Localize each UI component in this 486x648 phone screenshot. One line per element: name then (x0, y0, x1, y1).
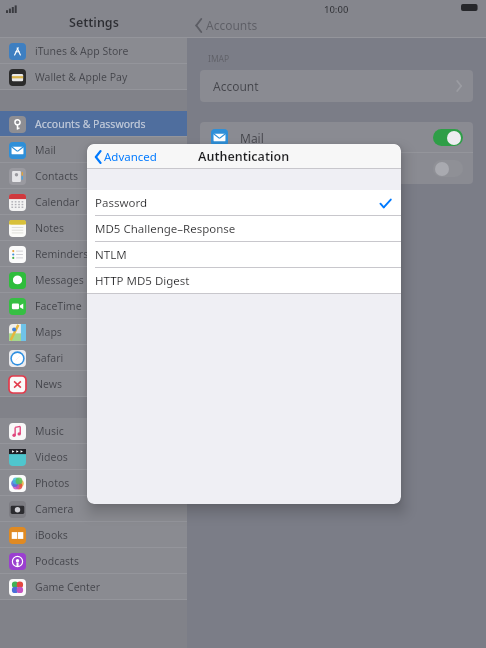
staticText: 10:00 (324, 3, 349, 16)
staticText: Music (35, 424, 64, 438)
staticText: NTLM (95, 247, 127, 263)
staticText: Game Center (35, 580, 101, 594)
button[interactable]: Camera (0, 496, 187, 522)
staticText: Notes (35, 221, 65, 235)
staticText: FaceTime (35, 299, 82, 313)
staticText: Reminders (35, 247, 89, 261)
staticText: Calendar (35, 195, 80, 209)
staticText: Videos (35, 450, 68, 464)
button[interactable]: Podcasts (0, 548, 187, 574)
button[interactable]: Videos (0, 444, 187, 470)
button[interactable]: Account (200, 70, 473, 102)
button[interactable]: HTTP MD5 Digest (87, 268, 401, 294)
button[interactable]: MD5 Challenge–Response (87, 216, 401, 242)
button[interactable]: Back to Accounts (195, 17, 258, 33)
button[interactable]: News (0, 371, 187, 397)
staticText: HTTP MD5 Digest (95, 273, 190, 289)
button[interactable]: Safari (0, 345, 187, 371)
staticText: IMAP (208, 53, 230, 65)
button[interactable]: Photos (0, 470, 187, 496)
staticText: Accounts & Passwords (35, 117, 146, 131)
button[interactable]: FaceTime (0, 293, 187, 319)
button[interactable]: Game Center (0, 574, 187, 600)
staticText: Account (213, 78, 259, 94)
button[interactable]: Maps (0, 319, 187, 345)
button[interactable]: Reminders (0, 241, 187, 267)
other: Notes disabled (433, 160, 463, 177)
staticText: Accounts (206, 17, 258, 33)
button[interactable]: Password (87, 190, 401, 216)
button[interactable]: Mail (0, 137, 187, 163)
staticText: Password (95, 195, 148, 211)
staticText: Photos (35, 476, 70, 490)
staticText: Safari (35, 351, 64, 365)
staticText: News (35, 377, 62, 391)
button[interactable]: Advanced (93, 146, 159, 168)
staticText: Maps (35, 325, 62, 339)
staticText: iBooks (35, 528, 68, 542)
button[interactable]: iTunes & App Store (0, 38, 187, 64)
button[interactable]: iBooks (0, 522, 187, 548)
staticText: Podcasts (35, 554, 79, 568)
button[interactable]: Mail (200, 122, 473, 153)
button[interactable]: Calendar (0, 189, 187, 215)
button[interactable]: Wallet & Apple Pay (0, 64, 187, 90)
staticText: Authentication (198, 148, 290, 165)
staticText: Messages (35, 273, 84, 287)
staticText: Camera (35, 502, 74, 516)
staticText: Mail (240, 130, 264, 146)
staticText: Advanced (104, 149, 157, 165)
button[interactable]: NTLM (87, 242, 401, 268)
other: Mail enabled (433, 129, 463, 146)
button[interactable]: Notes (0, 215, 187, 241)
button[interactable]: Accounts & Passwords (0, 111, 187, 137)
staticText: Wallet & Apple Pay (35, 70, 128, 84)
staticText: Mail (35, 143, 56, 157)
button[interactable]: Music (0, 418, 187, 444)
staticText: Contacts (35, 169, 79, 183)
staticText: Settings (69, 14, 119, 31)
staticText: MD5 Challenge–Response (95, 221, 236, 237)
button[interactable]: Notes disabled (200, 153, 473, 184)
button[interactable]: Messages (0, 267, 187, 293)
staticText: iTunes & App Store (35, 44, 129, 58)
button[interactable]: Contacts (0, 163, 187, 189)
